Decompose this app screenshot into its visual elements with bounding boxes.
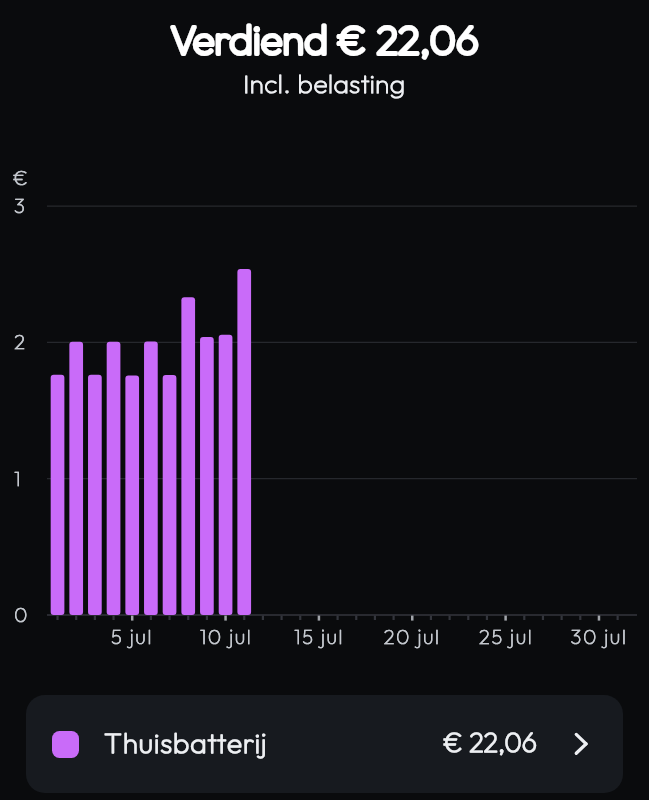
staticText: 2	[14, 329, 40, 355]
staticText: € 22,06	[337, 725, 537, 759]
staticText: 5 jul	[84, 624, 180, 650]
staticText: 20 jul	[364, 624, 460, 650]
staticText: Verdiend € 22,06	[0, 14, 649, 64]
staticText: 15 jul	[271, 624, 367, 650]
staticText: 1	[14, 466, 40, 492]
staticText: Incl. belasting	[0, 67, 649, 100]
staticText: 1	[14, 466, 40, 492]
staticText: Verdiend € 22,06	[0, 14, 649, 64]
staticText: 25 jul	[458, 624, 554, 650]
staticText: €	[13, 165, 39, 191]
staticText: 15 jul	[271, 624, 367, 650]
staticText: 3	[14, 193, 40, 219]
other: Open Thuisbatterij details	[571, 728, 595, 760]
staticText: 10 jul	[178, 624, 274, 650]
staticText: 2	[14, 329, 40, 355]
staticText: 10 jul	[178, 624, 274, 650]
staticText: Incl. belasting	[0, 67, 649, 100]
staticText: Thuisbatterij	[104, 725, 324, 760]
staticText: € 22,06	[337, 725, 537, 759]
staticText: 3	[14, 193, 40, 219]
staticText: 25 jul	[458, 624, 554, 650]
button[interactable]: Thuisbatterij	[26, 695, 623, 793]
staticText: 5 jul	[84, 624, 180, 650]
staticText: 0	[14, 602, 40, 628]
staticText: 20 jul	[364, 624, 460, 650]
staticText: Thuisbatterij	[104, 725, 324, 760]
staticText: 30 jul	[551, 624, 647, 650]
staticText: 30 jul	[551, 624, 647, 650]
staticText: 0	[14, 602, 40, 628]
staticText: €	[13, 165, 39, 191]
